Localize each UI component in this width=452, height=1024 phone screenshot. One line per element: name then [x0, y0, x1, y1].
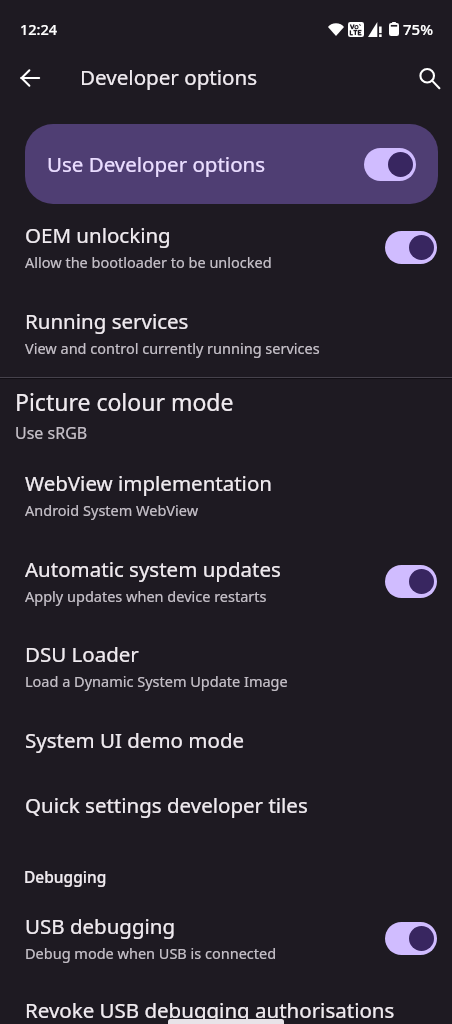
- button[interactable]: Running services: [0, 298, 452, 377]
- staticText: Debug mode when USB is connected: [25, 943, 277, 963]
- button[interactable]: WebView implementation: [0, 460, 452, 546]
- button[interactable]: OEM unlocking: [0, 212, 452, 298]
- staticText: Picture colour mode: [15, 386, 234, 417]
- button[interactable]: Quick settings developer tiles: [0, 782, 452, 854]
- staticText: Android System WebView: [25, 500, 199, 520]
- staticText: System UI demo mode: [25, 726, 245, 754]
- button[interactable]: Revoke USB debugging authorisations: [0, 987, 452, 1024]
- staticText: Automatic system updates: [25, 555, 281, 583]
- staticText: Apply updates when device restarts: [25, 586, 267, 606]
- staticText: View and control currently running servi…: [25, 338, 320, 358]
- staticText: Allow the bootloader to be unlocked: [25, 252, 272, 272]
- button[interactable]: System UI demo mode: [0, 717, 452, 782]
- staticText: Running services: [25, 307, 189, 335]
- staticText: USB debugging: [25, 912, 176, 940]
- staticText: Debugging: [24, 866, 107, 887]
- staticText: Load a Dynamic System Update Image: [25, 671, 288, 691]
- staticText: Developer options: [80, 63, 258, 91]
- button[interactable]: USB debugging: [0, 903, 452, 987]
- staticText: Use Developer options: [47, 150, 364, 178]
- button[interactable]: Automatic system updates: [0, 546, 452, 631]
- staticText: Revoke USB debugging authorisations: [25, 996, 395, 1024]
- staticText: OEM unlocking: [25, 221, 171, 249]
- button[interactable]: Search: [407, 56, 451, 100]
- button[interactable]: Back: [8, 56, 52, 100]
- staticText: Quick settings developer tiles: [25, 791, 308, 819]
- button[interactable]: Use Developer options: [25, 124, 438, 204]
- staticText: Use sRGB: [15, 422, 88, 444]
- button[interactable]: Picture colour mode: [0, 379, 452, 460]
- staticText: WebView implementation: [25, 469, 272, 497]
- staticText: 75%: [403, 19, 433, 39]
- staticText: DSU Loader: [25, 640, 139, 668]
- staticText: 12:24: [20, 19, 58, 39]
- button[interactable]: DSU Loader: [0, 631, 452, 717]
